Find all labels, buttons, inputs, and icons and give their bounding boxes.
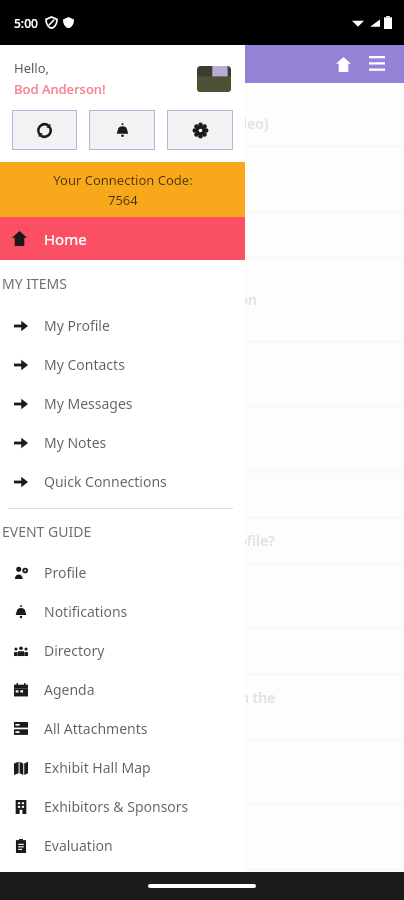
staticText: Who can see me? bbox=[16, 225, 134, 244]
staticText: What are notes and how do I share them w… bbox=[16, 753, 221, 791]
button[interactable]: How do I send a message? bbox=[0, 630, 404, 673]
button[interactable]: Notifications bbox=[0, 592, 245, 631]
staticText: Directory bbox=[44, 641, 105, 660]
button[interactable]: Who can see me? bbox=[0, 213, 404, 256]
button[interactable]: Exhibit Hall Map bbox=[0, 748, 245, 787]
staticText: Can I send in-app messages to other atte… bbox=[16, 818, 224, 856]
button[interactable]: What are notes and how do I share them w… bbox=[0, 741, 404, 803]
button[interactable]: Exhibitors & Sponsors bbox=[0, 787, 245, 826]
button[interactable]: Quick Connections bbox=[0, 462, 245, 501]
button[interactable]: Home bbox=[0, 217, 245, 260]
button[interactable]: Profile bbox=[0, 553, 245, 592]
staticText: How do I claim CE (credit hours) in the … bbox=[16, 688, 276, 726]
staticText: Quick Connections bbox=[44, 472, 167, 491]
button[interactable]: Directory bbox=[0, 631, 245, 670]
staticText: What is Quick Connect and how does it wo… bbox=[16, 355, 232, 393]
staticText: Bod Anderson! bbox=[14, 80, 106, 98]
button[interactable]: My Contacts bbox=[0, 345, 245, 384]
button[interactable]: Can I use the app if my device is offlin… bbox=[0, 565, 404, 627]
button[interactable]: Settings bbox=[167, 110, 233, 150]
staticText: All Attachments bbox=[44, 719, 148, 738]
staticText: Can I use the app if my device is offlin… bbox=[16, 577, 220, 615]
staticText: How do I get help with the app? bbox=[16, 485, 233, 504]
button[interactable]: Profile photo bbox=[197, 66, 231, 92]
staticText: How do I find content in the app? bbox=[16, 160, 207, 198]
button[interactable]: When does my data becomes available? bbox=[0, 408, 404, 470]
staticText: Exhibitors & Sponsors bbox=[44, 797, 189, 816]
staticText: Home bbox=[44, 229, 87, 249]
button[interactable]: My Profile bbox=[0, 306, 245, 345]
button[interactable]: What is Quick Connect and how does it wo… bbox=[0, 343, 404, 405]
button[interactable]: How do I find content in the app? bbox=[0, 148, 404, 210]
staticText: When does my data becomes available? bbox=[16, 420, 216, 458]
button[interactable]: Refresh bbox=[12, 110, 77, 150]
staticText: Exhibit Hall Map bbox=[44, 758, 151, 777]
staticText: How do I edit my profile, access my agen… bbox=[16, 95, 269, 133]
button[interactable]: How do I edit my profile, access my agen… bbox=[0, 83, 404, 145]
staticText: Do I have access to Attendees in my area… bbox=[16, 883, 237, 885]
staticText: 5:00 bbox=[14, 15, 38, 31]
button[interactable]: Notifications bbox=[89, 110, 155, 150]
button[interactable]: Agenda bbox=[0, 670, 245, 709]
button[interactable]: How do I claim CE (credit hours) in the … bbox=[0, 676, 404, 738]
staticText: My Messages bbox=[44, 394, 133, 413]
button[interactable]: Your Connection Code: bbox=[0, 162, 245, 217]
staticText: Your Connection Code: bbox=[53, 171, 193, 189]
button[interactable]: My Messages bbox=[0, 384, 245, 423]
staticText: Evaluation bbox=[44, 836, 113, 855]
staticText: EVENT GUIDE bbox=[2, 522, 92, 541]
button[interactable]: Home bbox=[326, 47, 360, 81]
staticText: Hello, bbox=[14, 59, 50, 77]
button[interactable]: Can I send in-app messages to other atte… bbox=[0, 806, 404, 868]
button[interactable]: How do I make changes in my profile? bbox=[0, 519, 404, 562]
staticText: Agenda bbox=[44, 680, 95, 699]
button[interactable]: Menu bbox=[360, 47, 394, 81]
staticText: Notifications bbox=[44, 602, 128, 621]
button[interactable]: All Attachments bbox=[0, 709, 245, 748]
staticText: How do I make changes in my profile? bbox=[16, 531, 275, 550]
staticText: MY ITEMS bbox=[2, 274, 67, 293]
button[interactable]: My Notes bbox=[0, 423, 245, 462]
staticText: My Contacts bbox=[44, 355, 125, 374]
staticText: How do I send a message? bbox=[16, 642, 196, 661]
button[interactable]: How can I stop people seeing my informat… bbox=[0, 259, 404, 340]
staticText: 7564 bbox=[108, 191, 138, 209]
button[interactable]: Evaluation bbox=[0, 826, 245, 865]
button[interactable]: Do I have access to Attendees in my area… bbox=[0, 871, 404, 897]
staticText: My Profile bbox=[44, 316, 110, 335]
staticText: Profile bbox=[44, 563, 87, 582]
staticText: My Notes bbox=[44, 433, 107, 452]
button[interactable]: How do I get help with the app? bbox=[0, 473, 404, 516]
staticText: How can I stop people seeing my informat… bbox=[16, 271, 258, 328]
